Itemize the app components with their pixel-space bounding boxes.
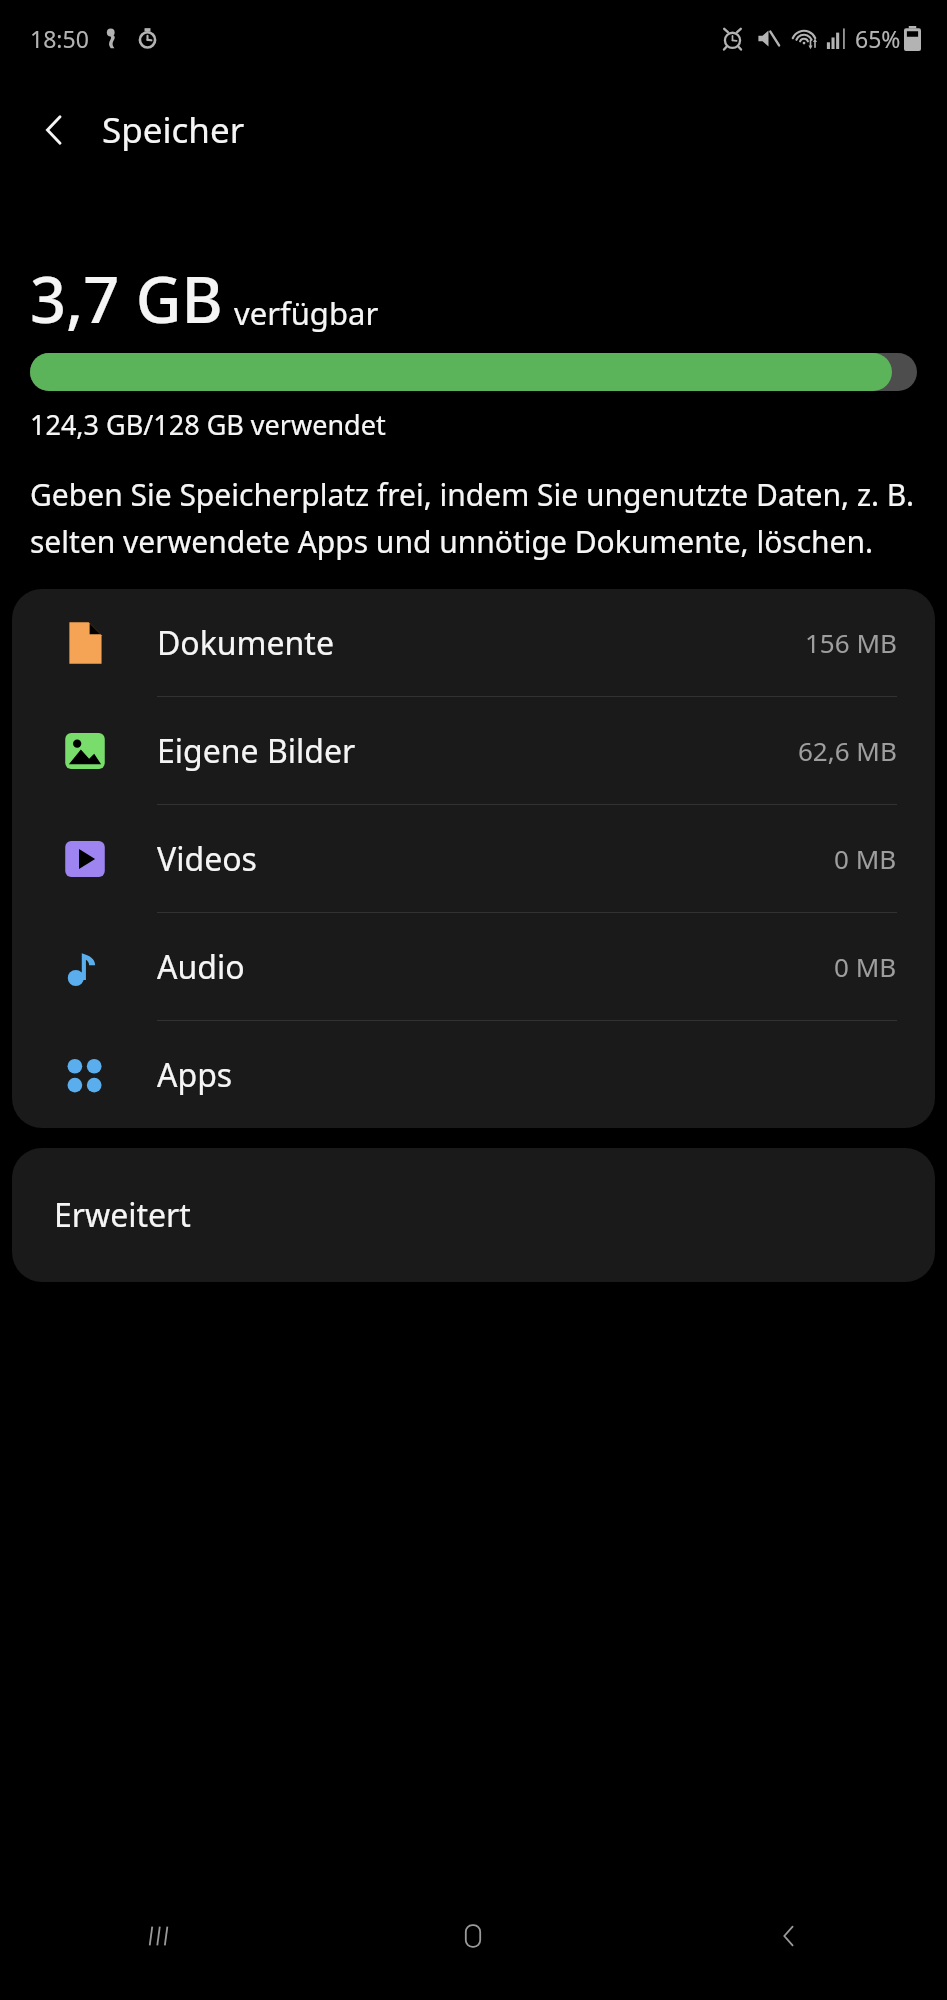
staticText: verfügbar [234, 292, 379, 334]
staticText: Geben Sie Speicherplatz frei, indem Sie … [30, 474, 923, 562]
staticText: 124,3 GB/128 GB verwendet [30, 406, 386, 443]
staticText: 0 MB [834, 841, 897, 876]
button[interactable]: Eigene Bilder [12, 697, 935, 804]
button[interactable]: Apps [12, 1021, 935, 1128]
button[interactable]: Videos [12, 805, 935, 912]
button[interactable]: Startseite [315, 1872, 631, 2000]
staticText: 62,6 MB [798, 733, 897, 768]
staticText: Videos [157, 837, 257, 881]
staticText: Dokumente [157, 621, 334, 665]
staticText: 65% [855, 23, 901, 54]
button[interactable]: Letzte Apps [0, 1872, 315, 2000]
button[interactable]: Zurück [631, 1872, 947, 2000]
staticText: 18:50 [30, 23, 89, 54]
staticText: 3,7 GB [30, 256, 223, 342]
button[interactable]: Audio [12, 913, 935, 1020]
button[interactable]: Erweitert [12, 1148, 935, 1282]
button[interactable]: Dokumente [12, 589, 935, 696]
staticText: Speicher [102, 106, 245, 154]
staticText: Apps [157, 1053, 233, 1097]
staticText: Eigene Bilder [157, 729, 356, 773]
button[interactable]: Zurück [22, 97, 88, 163]
staticText: Audio [157, 945, 245, 989]
staticText: Erweitert [54, 1193, 191, 1237]
staticText: 0 MB [834, 949, 897, 984]
staticText: 156 MB [805, 625, 897, 660]
